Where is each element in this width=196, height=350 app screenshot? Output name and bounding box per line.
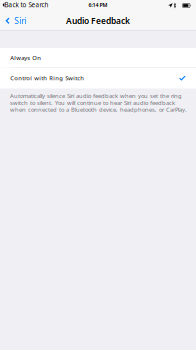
button[interactable]: Back to Search xyxy=(0,0,52,11)
staticText: Back to Search xyxy=(5,1,49,9)
staticText: Automatically silence Siri audio feedbac… xyxy=(10,92,187,113)
staticText: Audio Feedback xyxy=(66,15,130,26)
button[interactable]: Control with Ring Switch xyxy=(0,67,196,88)
staticText: Siri xyxy=(14,15,26,26)
button[interactable]: Siri xyxy=(0,11,32,30)
staticText: 6:14 PM xyxy=(88,1,107,9)
staticText: Always On xyxy=(10,54,41,62)
staticText: Control with Ring Switch xyxy=(10,74,84,82)
button[interactable]: Always On xyxy=(0,48,196,67)
